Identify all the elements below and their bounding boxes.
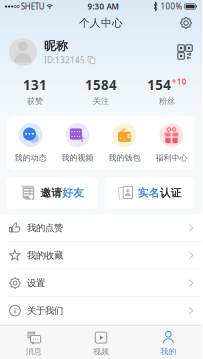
staticText: 设置 [27,277,45,289]
button[interactable]: 实名 [104,177,195,209]
button[interactable]: 邀请 [7,177,97,209]
staticText: 认证 [160,186,182,199]
button[interactable]: 我的钱包 [101,123,148,163]
button[interactable]: 我的视频 [54,123,101,163]
button[interactable]: 复制 ID [87,56,95,65]
button[interactable]: 131 [2,76,68,106]
staticText: 视频 [93,347,109,356]
staticText: 我的 [160,347,176,356]
button[interactable]: 我的 [135,327,202,359]
staticText: 关于我们 [27,305,63,316]
staticText: 关注 [93,96,109,106]
button[interactable]: 头像 [9,38,37,66]
staticText: 获赞 [27,96,43,106]
staticText: 我的视频 [61,153,93,163]
staticText: SHETU [21,1,45,12]
button[interactable]: 我的动态 [7,123,54,163]
staticText: 我的收藏 [27,250,63,261]
button[interactable]: 我的二维码 [177,44,193,60]
staticText: 实名 [138,186,160,199]
button[interactable]: 福利中心 [148,123,195,163]
button[interactable]: 关于我们 [0,297,202,325]
staticText: 昵称 [44,39,68,53]
staticText: 邀请 [40,186,62,199]
staticText: 我的动态 [14,153,46,163]
staticText: 131 [23,76,47,94]
button[interactable]: 视频 [67,327,135,359]
staticText: 我的点赞 [27,222,63,234]
staticText: 消息 [26,347,42,356]
staticText: 9:30 AM [87,1,118,12]
button[interactable]: 我的收藏 [0,242,202,270]
staticText: +10 [172,76,187,87]
staticText: 福利中心 [155,153,187,163]
button[interactable]: 1584 [68,76,134,106]
button[interactable]: 消息 [0,327,67,359]
button[interactable]: 我的点赞 [0,214,202,242]
staticText: 个人中心 [79,16,123,29]
staticText: 154 [147,76,171,94]
staticText: ID:132145 [44,55,85,65]
button[interactable]: 设置 [176,13,196,33]
staticText: 100% [161,1,183,12]
button[interactable]: 设置 [0,270,202,297]
staticText: 好友 [62,186,84,199]
button[interactable]: 154 [134,76,200,106]
staticText: 我的钱包 [108,153,140,163]
staticText: 1584 [85,76,117,94]
staticText: 粉丝 [159,96,175,106]
